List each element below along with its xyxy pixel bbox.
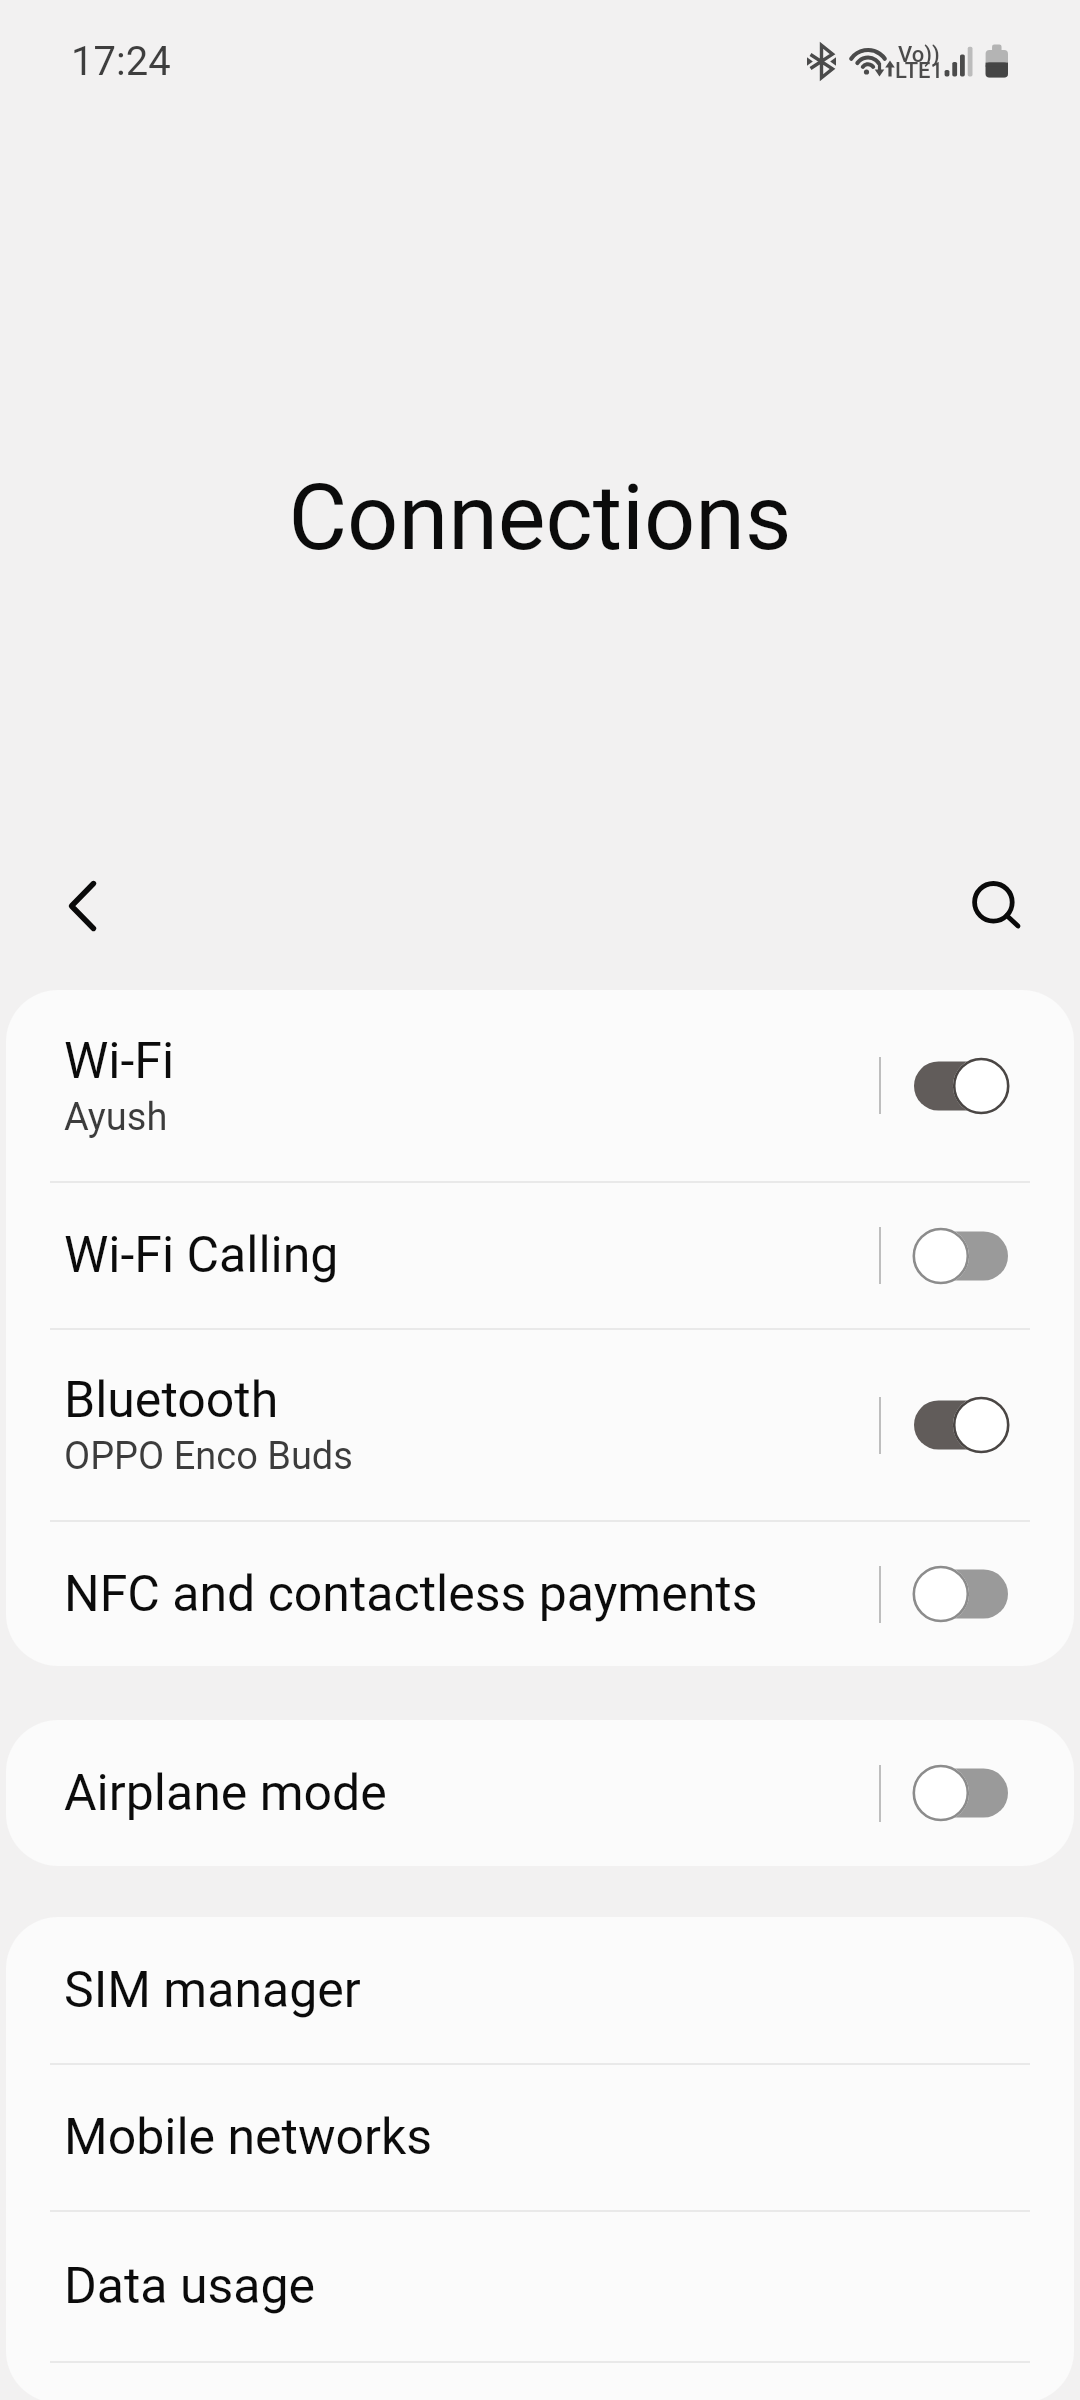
staticText: Ayush	[64, 1095, 168, 1140]
staticText: Mobile networks	[64, 2108, 433, 2167]
button[interactable]: Wi-Fi Calling	[6, 1183, 877, 1328]
button[interactable]: Toggle NFC and contactless payments	[879, 1522, 1074, 1666]
button[interactable]: Mobile networks	[6, 2065, 1074, 2210]
button[interactable]: NFC and contactless payments	[6, 1522, 877, 1666]
button[interactable]: Toggle Bluetooth	[879, 1330, 1074, 1520]
staticText: Airplane mode	[64, 1764, 387, 1823]
button[interactable]: Toggle Wi-Fi Calling	[879, 1183, 1074, 1328]
button[interactable]: Toggle Airplane mode	[879, 1720, 1074, 1866]
button[interactable]: Toggle Wi-Fi	[879, 990, 1074, 1181]
staticText: SIM manager	[64, 1961, 361, 2020]
staticText: LTE1	[895, 58, 944, 84]
staticText: Wi-Fi	[64, 1032, 175, 1091]
button[interactable]: Wi-Fi	[6, 990, 877, 1181]
button[interactable]: Airplane mode	[6, 1720, 877, 1866]
staticText: NFC and contactless payments	[64, 1565, 758, 1624]
button[interactable]: SIM manager	[6, 1917, 1074, 2063]
button[interactable]: Bluetooth	[6, 1330, 877, 1520]
staticText: Wi-Fi Calling	[64, 1226, 339, 1285]
staticText: 17:24	[71, 38, 171, 85]
button[interactable]: Search	[952, 860, 1036, 944]
staticText: Vo))	[898, 42, 940, 68]
staticText: Connections	[0, 466, 1080, 571]
staticText: Data usage	[64, 2257, 316, 2316]
button[interactable]: Back	[42, 859, 126, 943]
staticText: Bluetooth	[64, 1371, 279, 1430]
staticText: OPPO Enco Buds	[64, 1434, 353, 1479]
button[interactable]: Data usage	[6, 2212, 1074, 2361]
